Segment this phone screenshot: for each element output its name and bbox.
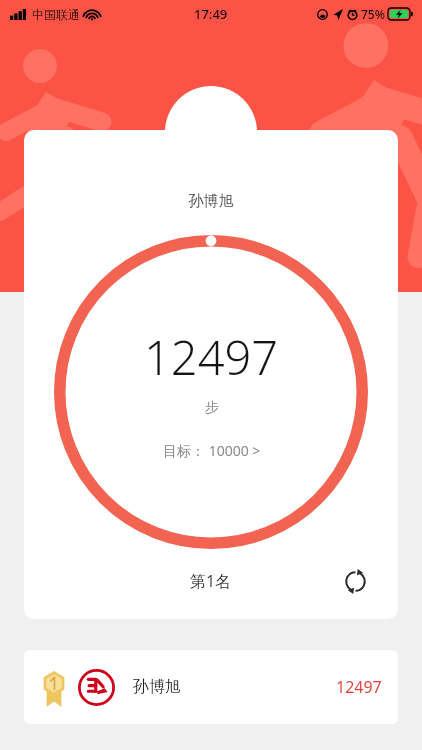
staticText: 孙博旭: [133, 677, 181, 697]
button[interactable]: Refresh: [338, 564, 372, 598]
button[interactable]: 目标： 10000 >: [163, 441, 261, 460]
staticText: 12497: [336, 676, 382, 698]
staticText: 目标： 10000 >: [163, 441, 261, 460]
staticText: 12497: [144, 325, 279, 389]
button[interactable]: 孙博旭: [24, 650, 398, 724]
staticText: 75%: [361, 6, 385, 22]
staticText: 孙博旭: [24, 192, 398, 211]
staticText: 17:49: [194, 5, 228, 23]
staticText: 步: [205, 399, 219, 417]
staticText: 第1名: [190, 570, 232, 592]
staticText: 中国联通: [32, 7, 80, 22]
